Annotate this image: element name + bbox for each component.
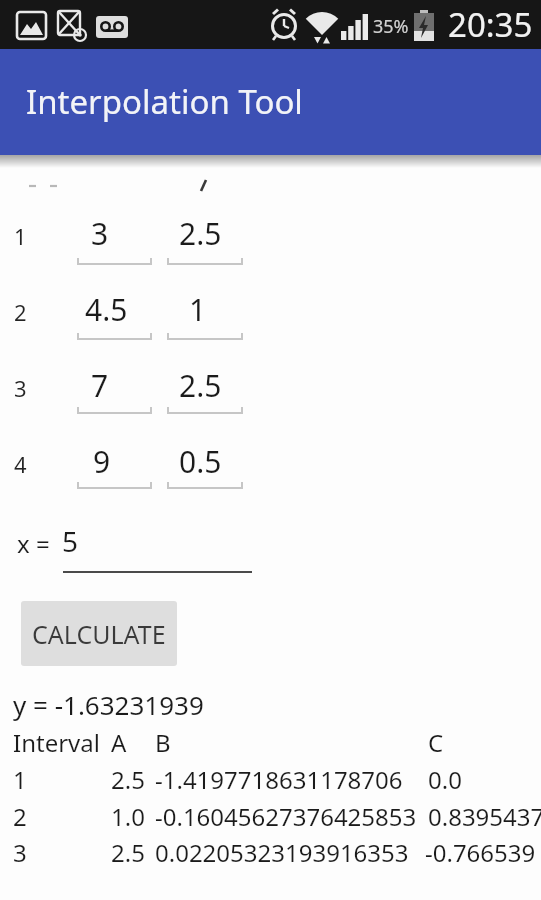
- staticText: -0.16045627376425853: [155, 800, 417, 833]
- staticText: 1: [14, 221, 27, 251]
- staticText: 2: [14, 297, 27, 327]
- button[interactable]: [167, 441, 243, 491]
- staticText: 9: [93, 441, 111, 482]
- button[interactable]: CALCULATE: [21, 601, 177, 666]
- staticText: Interpolation Tool: [26, 79, 303, 124]
- button[interactable]: [63, 525, 252, 575]
- staticText: 3: [13, 836, 27, 869]
- button[interactable]: [77, 217, 152, 267]
- staticText: -1.4197718631178706: [155, 763, 403, 796]
- staticText: x =: [17, 527, 50, 560]
- button[interactable]: [167, 292, 243, 342]
- staticText: 2.5: [179, 365, 222, 406]
- staticText: 20:35: [448, 2, 533, 47]
- staticText: 2.5: [111, 763, 145, 796]
- staticText: y = -1.63231939: [13, 687, 204, 722]
- staticText: 35%: [373, 14, 409, 39]
- staticText: 1.0: [111, 800, 145, 833]
- staticText: -0.766539: [425, 836, 536, 869]
- button[interactable]: [167, 217, 243, 267]
- staticText: 0.5: [179, 441, 222, 482]
- staticText: 2.5: [111, 836, 145, 869]
- staticText: Interval: [13, 726, 100, 759]
- button[interactable]: [77, 366, 152, 416]
- staticText: 1: [13, 763, 27, 796]
- staticText: 4.5: [85, 289, 128, 330]
- staticText: 1: [189, 289, 207, 330]
- staticText: 0.8395437: [428, 800, 541, 833]
- staticText: 4: [14, 449, 27, 479]
- staticText: 0.0: [428, 763, 462, 796]
- staticText: 2.5: [179, 213, 222, 254]
- staticText: 3: [91, 213, 109, 254]
- staticText: 5: [62, 522, 79, 560]
- staticText: 3: [14, 373, 27, 403]
- button[interactable]: [77, 441, 152, 491]
- staticText: C: [428, 726, 444, 759]
- staticText: 2: [13, 800, 27, 833]
- staticText: A: [111, 726, 127, 759]
- staticText: 0.02205323193916353: [155, 836, 409, 869]
- button[interactable]: [167, 366, 243, 416]
- staticText: CALCULATE: [32, 617, 166, 651]
- staticText: 7: [91, 365, 109, 406]
- staticText: B: [155, 726, 171, 759]
- button[interactable]: [77, 292, 152, 342]
